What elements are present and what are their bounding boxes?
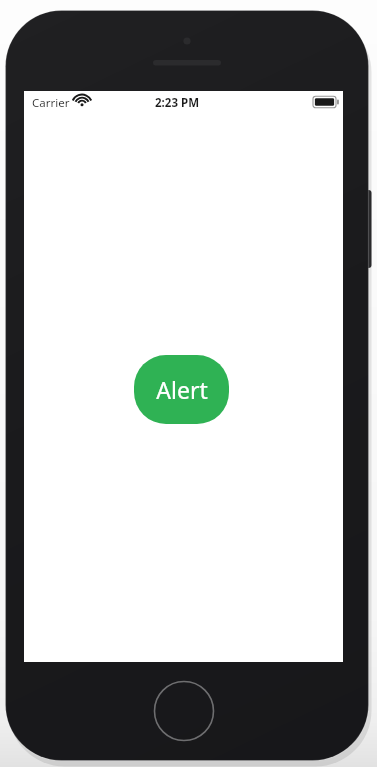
staticText: Carrier [32, 95, 70, 111]
staticText: Alert [156, 374, 208, 405]
button[interactable]: Alert [134, 355, 229, 424]
staticText: 2:23 PM [155, 95, 199, 111]
button[interactable]: Home [154, 681, 214, 741]
